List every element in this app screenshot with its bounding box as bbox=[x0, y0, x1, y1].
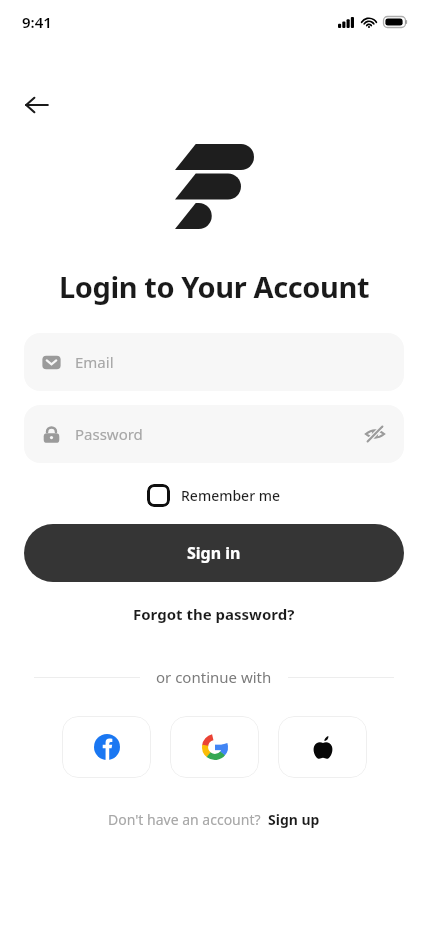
button[interactable]: Sign in with Facebook bbox=[62, 716, 151, 778]
button[interactable]: Forgot the password? bbox=[123, 599, 305, 629]
staticText: Password bbox=[75, 424, 143, 444]
button[interactable]: Email bbox=[24, 333, 404, 391]
staticText: Email bbox=[75, 352, 114, 372]
button[interactable]: Password bbox=[24, 405, 404, 463]
button[interactable]: Sign up bbox=[268, 810, 320, 829]
staticText: Sign in bbox=[187, 542, 241, 564]
staticText: Remember me bbox=[181, 486, 281, 505]
button[interactable]: Back bbox=[14, 82, 60, 128]
button[interactable]: Show password bbox=[360, 419, 390, 449]
staticText: Don't have an account? bbox=[108, 810, 261, 829]
button[interactable]: Sign in bbox=[24, 524, 404, 582]
button[interactable]: Sign in with Google bbox=[170, 716, 259, 778]
staticText: Login to Your Account bbox=[0, 267, 428, 306]
button[interactable]: Remember me bbox=[141, 480, 287, 511]
staticText: or continue with bbox=[156, 667, 272, 687]
button[interactable]: Sign in with Apple bbox=[278, 716, 367, 778]
staticText: 9:41 bbox=[22, 12, 52, 32]
staticText: Forgot the password? bbox=[133, 604, 295, 624]
staticText: Sign up bbox=[268, 810, 320, 829]
